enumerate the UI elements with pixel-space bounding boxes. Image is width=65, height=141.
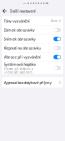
button[interactable]: Zámek obrazovky bbox=[2, 25, 63, 34]
button[interactable]: Systémová haptika bbox=[2, 62, 63, 74]
staticText: Tóny vyzvánění bbox=[4, 18, 30, 23]
staticText: Vibrace při stisknutí a v některých syst… bbox=[4, 67, 34, 74]
staticText: Snímek obrazovky bbox=[4, 36, 36, 42]
button[interactable]: Klepnutí na obrazovku bbox=[2, 44, 63, 52]
staticText: Systémová haptika bbox=[4, 61, 36, 67]
staticText: Zámek obrazovky bbox=[4, 27, 35, 32]
staticText: Další nastavení bbox=[10, 8, 36, 14]
button[interactable]: Tóny vyzvánění bbox=[2, 16, 63, 25]
staticText: Vypnout bezdotykové příjmy bbox=[4, 80, 52, 85]
button[interactable]: Snímek obrazovky bbox=[2, 35, 63, 43]
staticText: Auto bbox=[51, 19, 58, 23]
button[interactable]: Vypnout bezdotykové příjmy bbox=[2, 77, 63, 87]
button[interactable]: Vibrace při vyzvánění bbox=[2, 53, 63, 61]
staticText: Vibrace při vyzvánění bbox=[4, 54, 41, 60]
button[interactable]: Back bbox=[2, 7, 8, 15]
staticText: Klepnutí na obrazovku bbox=[4, 45, 41, 51]
